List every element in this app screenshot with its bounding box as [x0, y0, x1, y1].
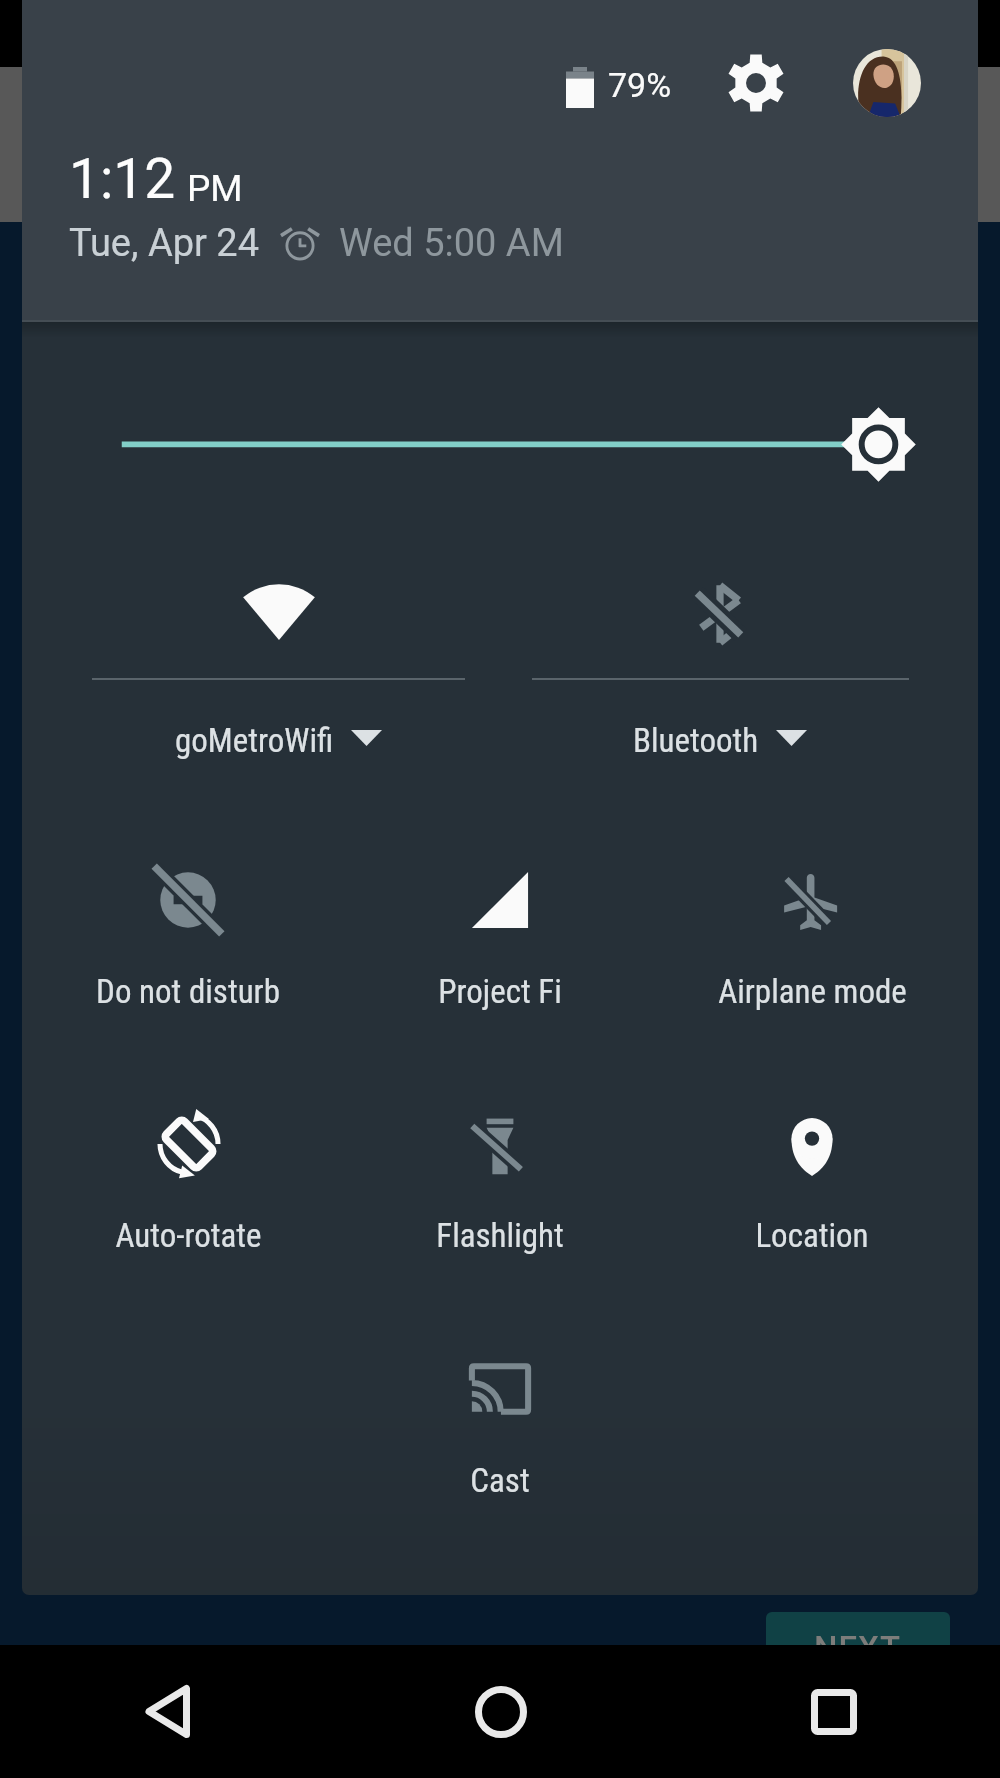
button[interactable]: Airplane mode	[662, 844, 962, 1012]
button[interactable]: Cast	[350, 1333, 650, 1501]
button[interactable]: User profile	[853, 49, 921, 117]
button[interactable]: NEXT	[766, 1612, 950, 1684]
staticText: Tue, Apr 24	[69, 221, 260, 266]
button[interactable]: Recent apps	[667, 1645, 1000, 1778]
staticText: Wed 5:00 AM	[339, 221, 564, 266]
staticText: Bluetooth	[633, 721, 759, 760]
staticText: 1:12	[69, 147, 176, 211]
staticText: Airplane mode	[718, 972, 907, 1011]
button[interactable]: Back	[0, 1645, 334, 1778]
staticText: PM	[187, 167, 243, 210]
button[interactable]: Bluetooth	[510, 575, 930, 770]
staticText: Do not disturb	[96, 972, 280, 1011]
staticText: Auto-rotate	[115, 1216, 262, 1255]
staticText: Location	[755, 1216, 869, 1255]
staticText: Project Fi	[438, 972, 562, 1011]
button[interactable]: Auto-rotate	[38, 1088, 338, 1256]
button[interactable]: Settings	[715, 42, 797, 124]
button[interactable]: Project Fi	[350, 844, 650, 1012]
button[interactable]: Battery 79 percent	[558, 52, 680, 122]
button[interactable]: Brightness	[100, 400, 940, 490]
button[interactable]: Home	[334, 1645, 667, 1778]
button[interactable]: Flashlight	[350, 1088, 650, 1256]
staticText: NEXT	[814, 1629, 902, 1668]
staticText: 79%	[608, 65, 672, 105]
button[interactable]: Location	[662, 1088, 962, 1256]
button[interactable]: Do not disturb	[38, 844, 338, 1012]
staticText: goMetroWifi	[175, 721, 334, 760]
button[interactable]: Wi-Fi, goMetroWifi	[68, 575, 488, 770]
staticText: Flashlight	[436, 1216, 564, 1255]
staticText: Cast	[470, 1461, 530, 1500]
